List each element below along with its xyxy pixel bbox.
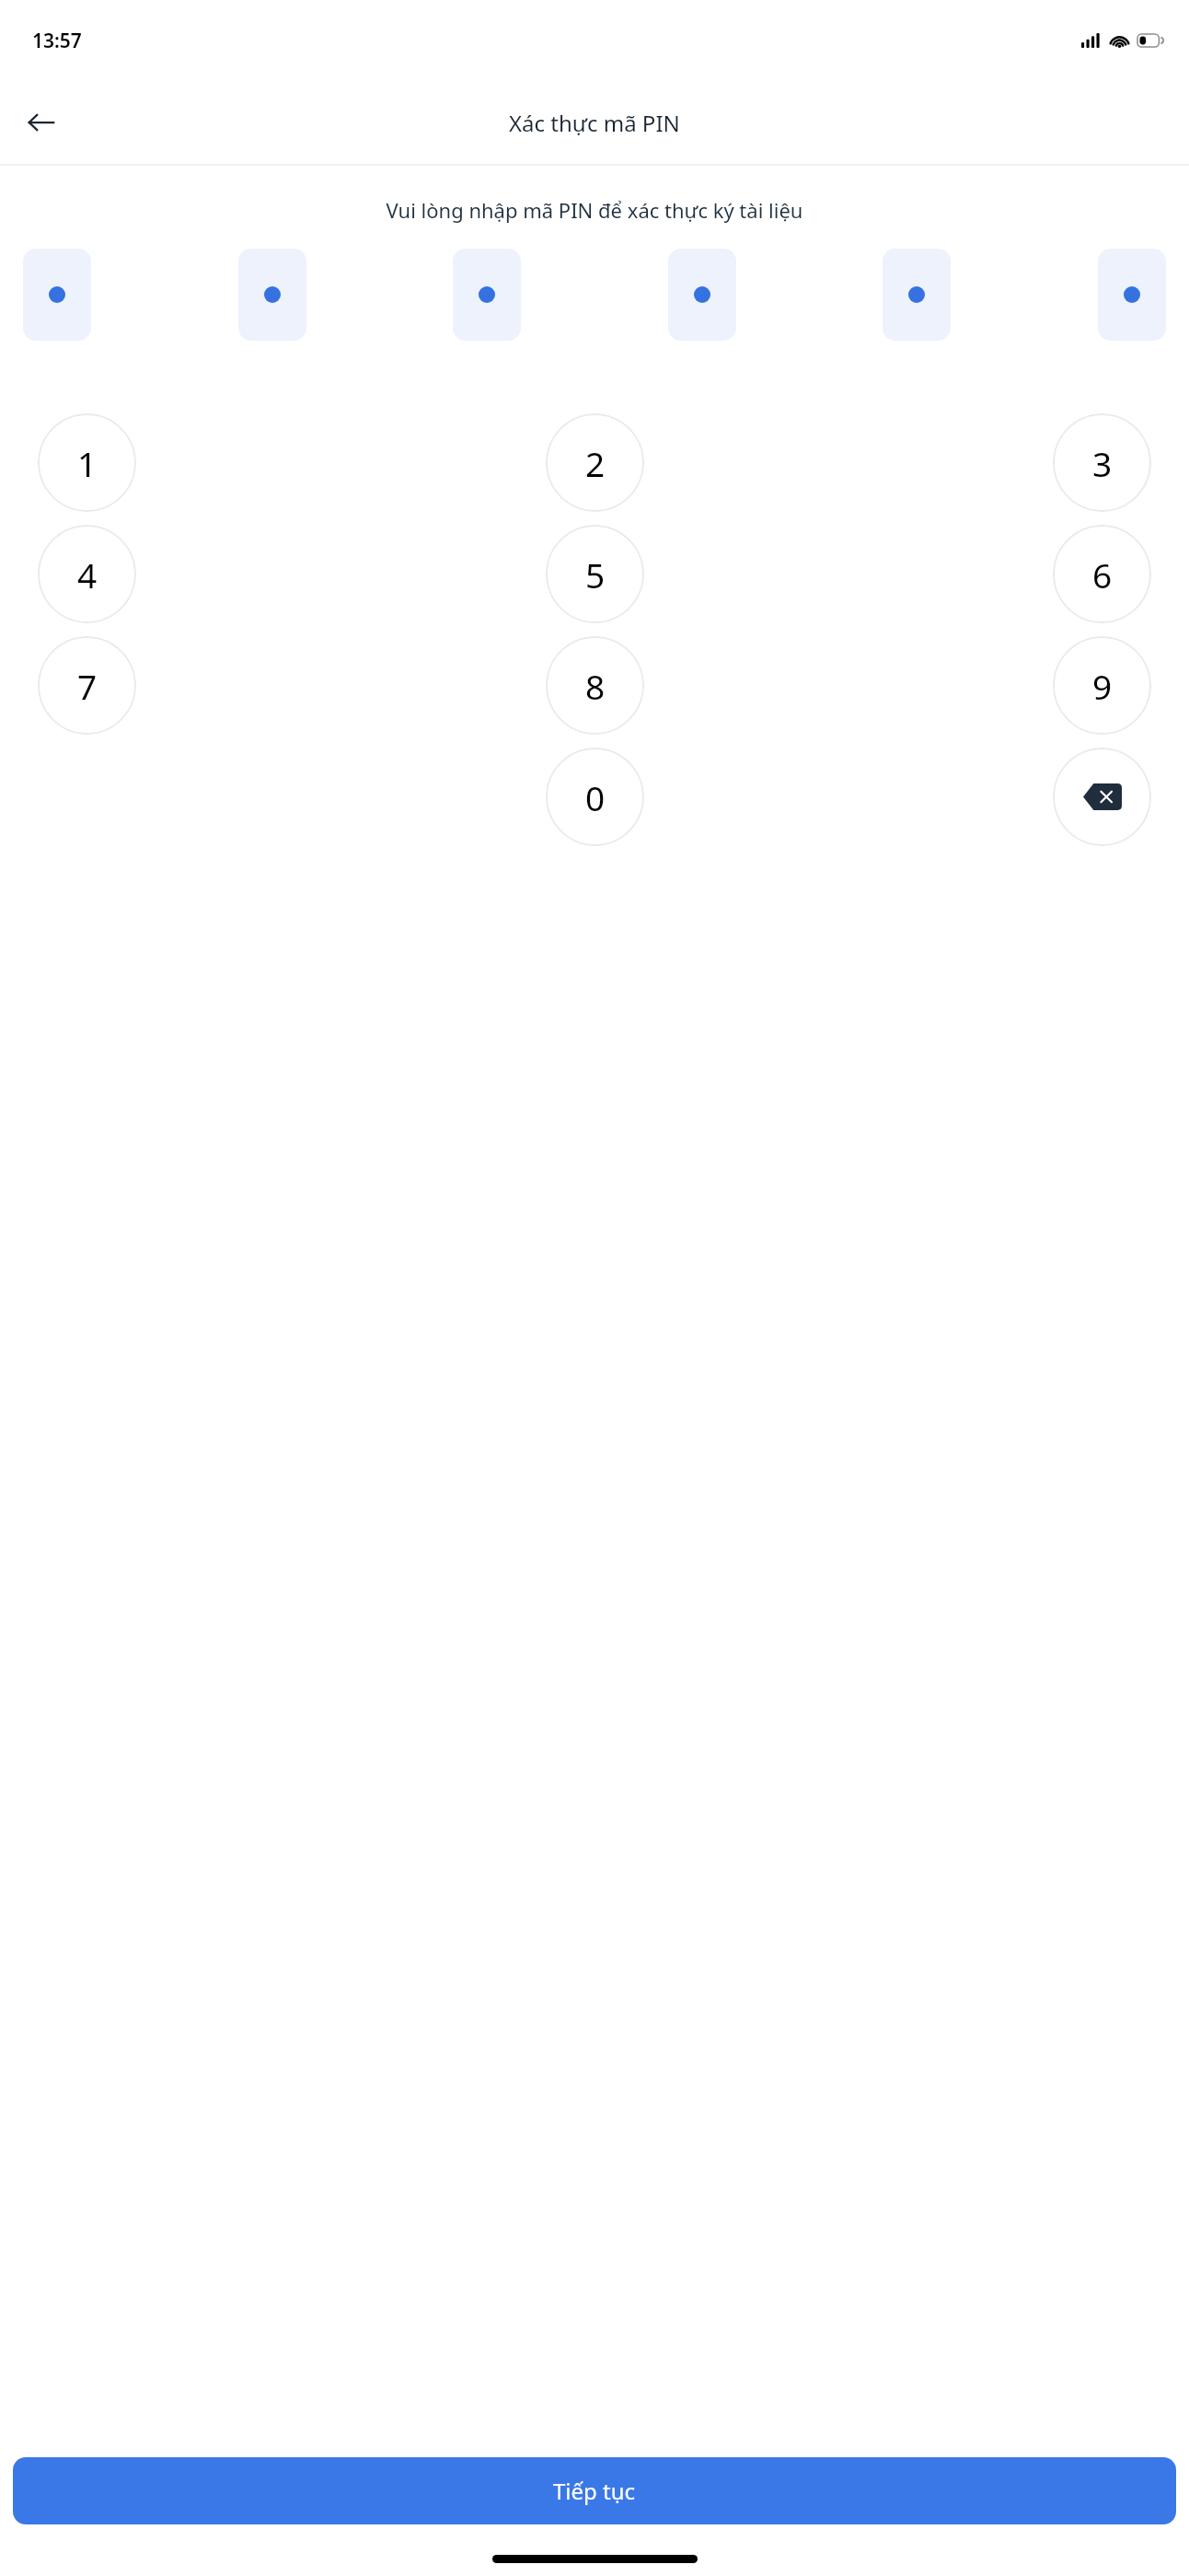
button[interactable] [883,249,951,341]
button[interactable]: 2 [546,413,644,512]
button[interactable]: 7 [38,636,136,735]
button[interactable]: 0 [546,748,644,846]
button[interactable]: 8 [546,636,644,735]
staticText: 5 [585,551,606,598]
button[interactable]: 1 [38,413,136,512]
button[interactable] [668,249,736,341]
button[interactable]: 4 [38,525,136,623]
staticText: 6 [1092,551,1113,598]
staticText: 13:57 [32,28,82,54]
button[interactable]: 9 [1053,636,1151,735]
staticText: Tiếp tục [553,2476,636,2506]
staticText: 1 [77,440,98,486]
button[interactable]: 5 [546,525,644,623]
button[interactable]: 3 [1053,413,1151,512]
button[interactable]: Tiếp tục [13,2457,1176,2524]
staticText: 3 [1092,440,1113,486]
staticText: 4 [77,551,98,598]
button[interactable] [453,249,521,341]
button[interactable] [238,249,306,341]
staticText: 7 [77,663,98,709]
staticText: 2 [585,440,606,486]
staticText: 8 [585,663,606,709]
button[interactable] [1098,249,1166,341]
button[interactable]: Back [13,94,70,151]
staticText: Vui lòng nhập mã PIN để xác thực ký tài … [0,196,1189,224]
staticText: 0 [585,774,606,820]
button[interactable]: Backspace [1053,748,1151,846]
staticText: 9 [1092,663,1113,709]
button[interactable]: 6 [1053,525,1151,623]
staticText: Xác thực mã PIN [509,108,680,138]
button[interactable] [23,249,91,341]
